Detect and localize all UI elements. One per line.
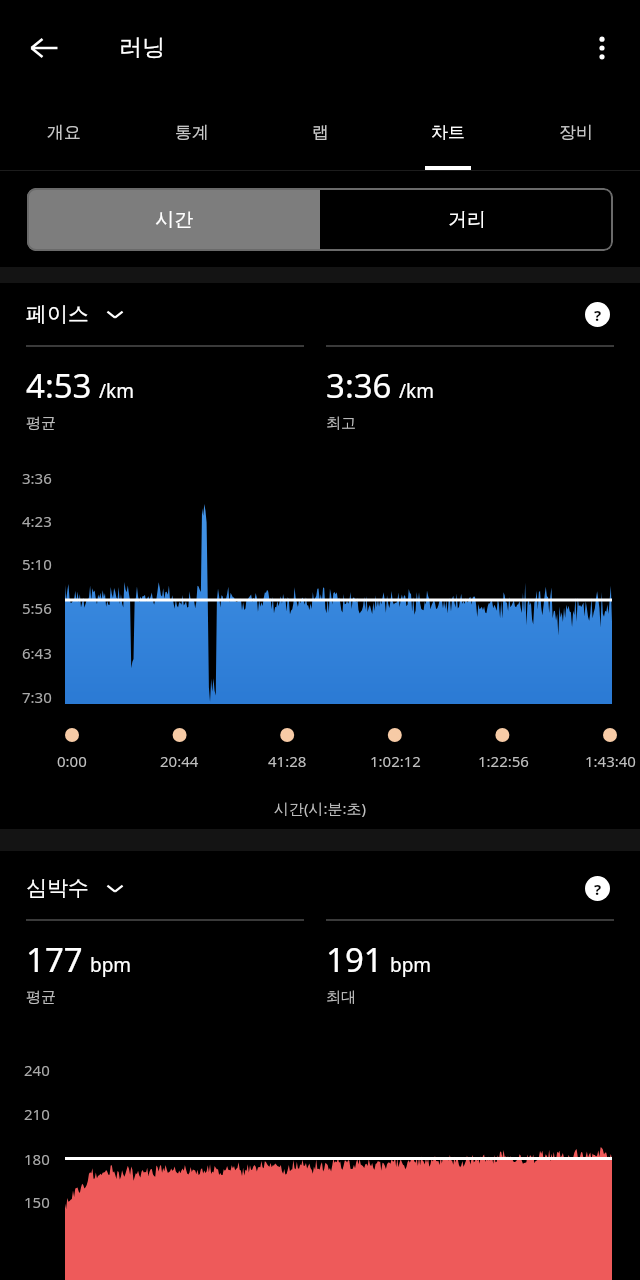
button[interactable]: 191	[326, 919, 614, 1034]
button[interactable]: 거리	[320, 188, 613, 251]
staticText: 개요	[47, 122, 81, 143]
button[interactable]: More options	[578, 24, 626, 72]
staticText: 240	[24, 1060, 50, 1080]
staticText: 150	[24, 1192, 50, 1212]
staticText: 거리	[448, 208, 486, 232]
staticText: ?	[594, 879, 602, 899]
staticText: 러닝	[119, 33, 165, 62]
staticText: 7:30	[22, 687, 52, 707]
staticText: bpm	[390, 952, 432, 978]
staticText: 41:28	[268, 751, 307, 771]
staticText: ?	[594, 305, 602, 325]
staticText: 177	[26, 937, 83, 982]
staticText: /km	[399, 378, 434, 404]
staticText: 심박수	[26, 875, 89, 901]
staticText: 최고	[326, 414, 356, 433]
staticText: 6:43	[22, 643, 52, 663]
staticText: 랩	[312, 122, 329, 143]
staticText: 차트	[431, 122, 465, 143]
button[interactable]: 랩	[256, 95, 384, 170]
staticText: 4:23	[22, 511, 52, 531]
button[interactable]: 페이스	[26, 301, 125, 327]
staticText: 0:00	[57, 751, 87, 771]
button[interactable]: 차트	[384, 95, 512, 170]
staticText: 5:56	[22, 598, 52, 618]
staticText: bpm	[90, 952, 132, 978]
button[interactable]: 개요	[0, 95, 128, 170]
button[interactable]: 시간	[27, 188, 320, 251]
staticText: /km	[99, 378, 134, 404]
staticText: 시간(시:분:초)	[274, 798, 367, 818]
staticText: 191	[326, 937, 383, 982]
staticText: 4:53	[26, 363, 92, 408]
button[interactable]: 장비	[512, 95, 640, 170]
button[interactable]: 3:36	[326, 345, 614, 460]
staticText: 5:10	[22, 554, 52, 574]
staticText: 3:36	[22, 468, 52, 488]
button[interactable]: 통계	[128, 95, 256, 170]
staticText: 20:44	[160, 751, 199, 771]
staticText: 180	[24, 1149, 50, 1169]
staticText: 평균	[26, 988, 56, 1007]
staticText: 통계	[175, 122, 209, 143]
button[interactable]: Help	[580, 871, 614, 905]
staticText: 1:43:40	[585, 751, 636, 771]
staticText: 3:36	[326, 363, 392, 408]
staticText: 장비	[559, 122, 593, 143]
staticText: 페이스	[26, 301, 89, 327]
button[interactable]: 심박수	[26, 875, 125, 901]
button[interactable]: 177	[26, 919, 304, 1034]
staticText: 평균	[26, 414, 56, 433]
staticText: 1:22:56	[478, 751, 529, 771]
button[interactable]: Help	[580, 297, 614, 331]
button[interactable]: Back	[14, 18, 74, 78]
staticText: 최대	[326, 988, 356, 1007]
staticText: 210	[24, 1104, 50, 1124]
staticText: 시간	[155, 208, 193, 232]
button[interactable]: 4:53	[26, 345, 304, 460]
staticText: 1:02:12	[370, 751, 421, 771]
